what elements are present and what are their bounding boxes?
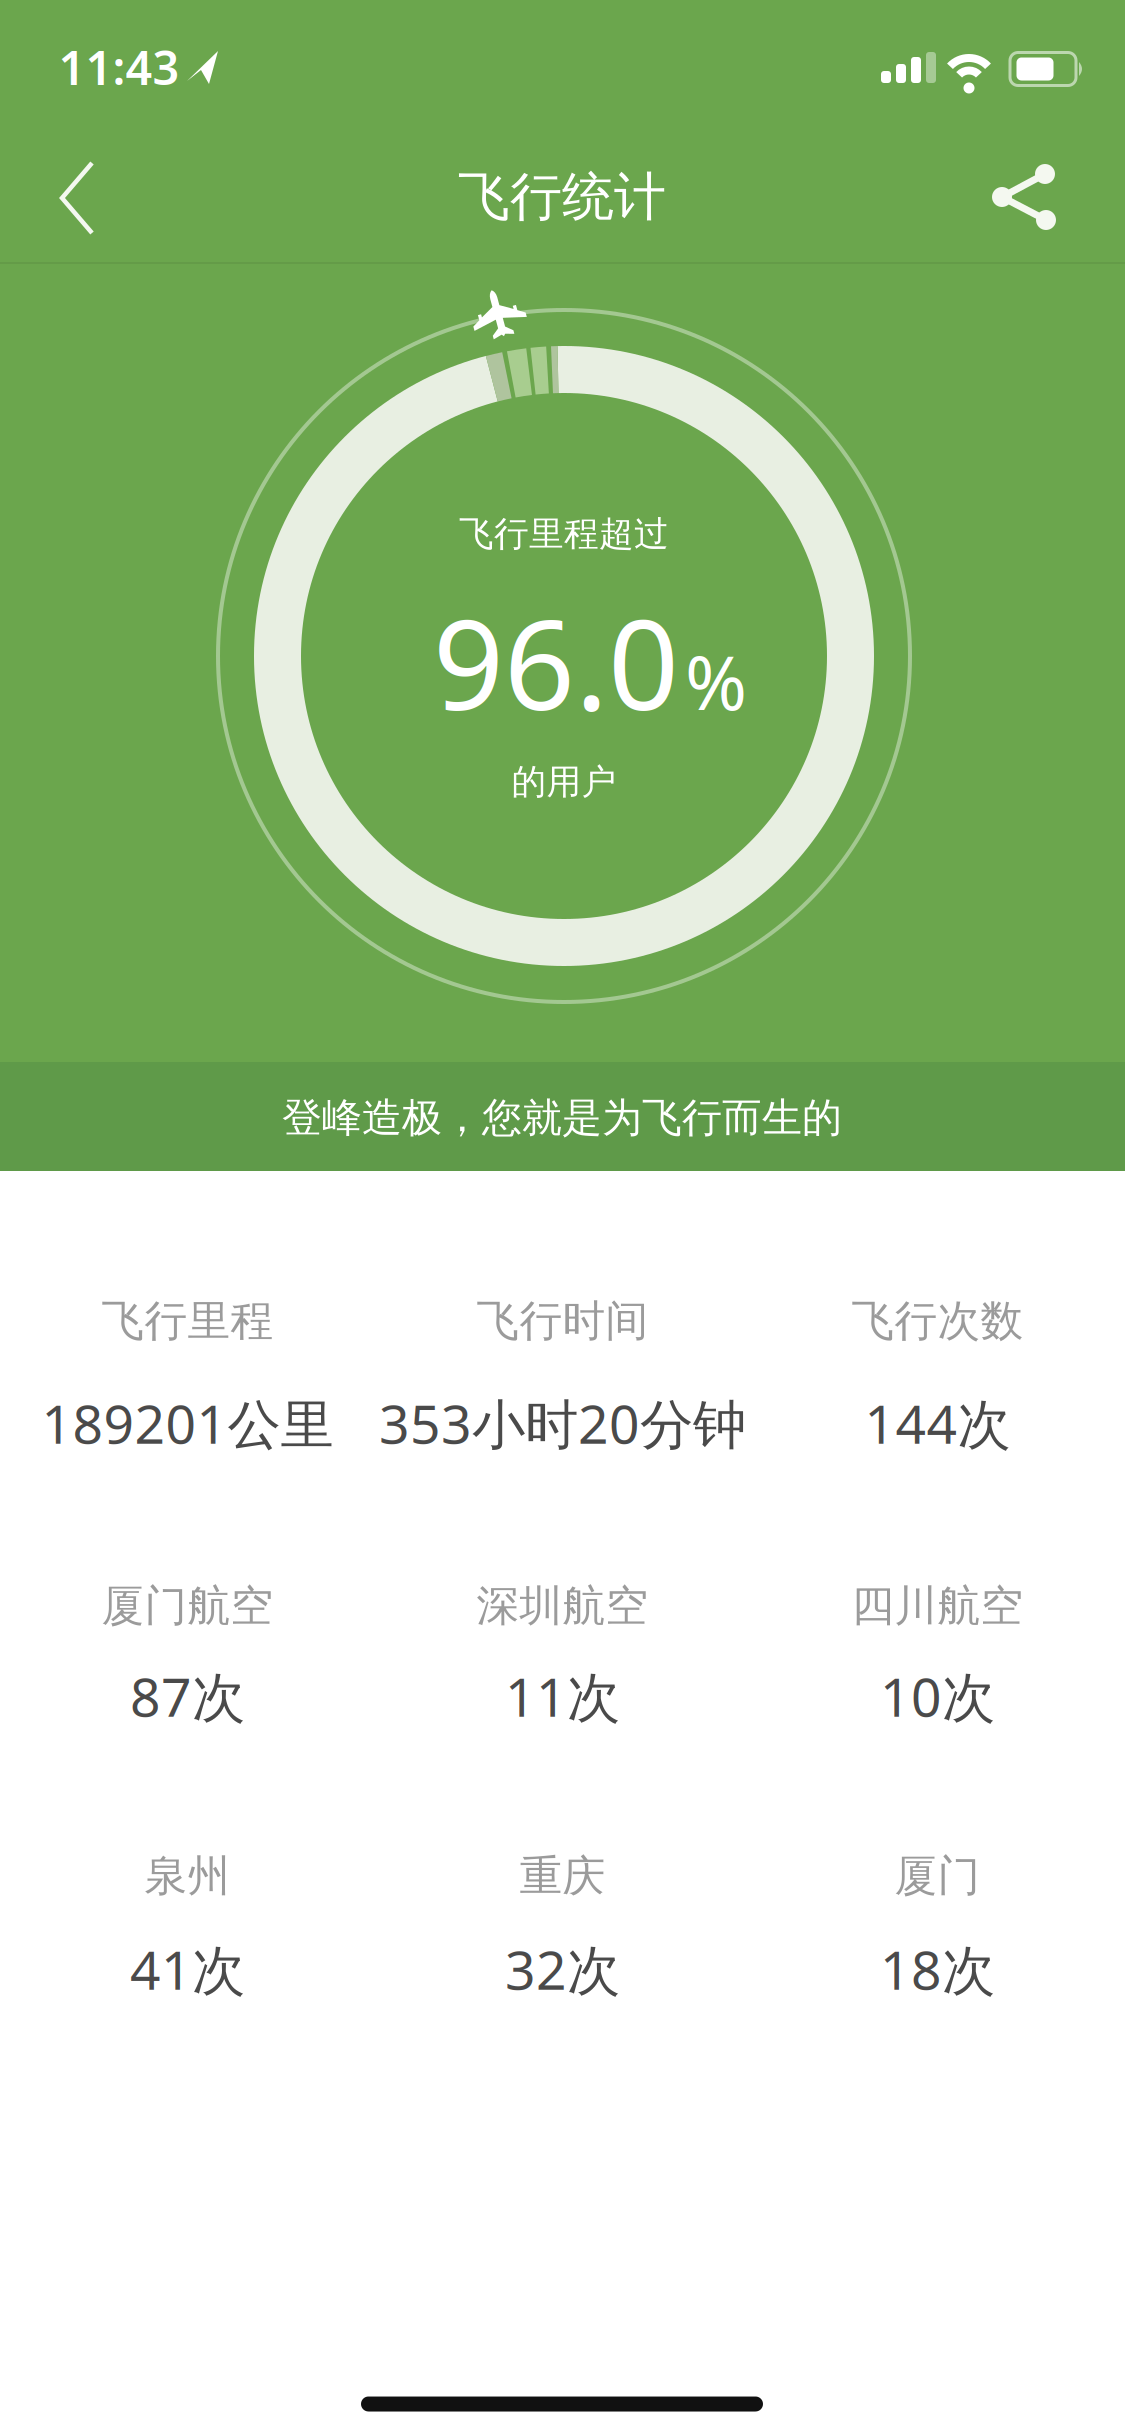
staticText: 登峰造极，您就是为飞行而生的 <box>282 1093 842 1142</box>
staticText: 四川航空 <box>851 1580 1023 1632</box>
staticText: 144次 <box>864 1388 1010 1458</box>
button[interactable] <box>969 142 1079 252</box>
staticText: 深圳航空 <box>476 1580 648 1632</box>
staticText: 189201公里 <box>41 1388 333 1458</box>
staticText: 11次 <box>505 1661 620 1731</box>
staticText: 的用户 <box>511 761 616 803</box>
staticText: 厦门 <box>894 1850 980 1902</box>
staticText: 泉州 <box>144 1850 230 1902</box>
staticText: 重庆 <box>519 1850 605 1902</box>
staticText: 飞行里程 <box>101 1295 273 1347</box>
staticText: 353小时20分钟 <box>379 1388 746 1458</box>
staticText: 飞行统计 <box>458 165 666 229</box>
staticText: 96.0 <box>433 580 679 744</box>
staticText: 18次 <box>880 1934 995 2004</box>
staticText: % <box>685 632 747 731</box>
staticText: 飞行次数 <box>851 1295 1023 1347</box>
staticText: 飞行里程超过 <box>459 513 669 555</box>
staticText: 11:43 <box>58 36 179 98</box>
staticText: 87次 <box>130 1661 245 1731</box>
staticText: 飞行时间 <box>476 1295 648 1347</box>
staticText: 41次 <box>130 1934 245 2004</box>
staticText: 32次 <box>505 1934 620 2004</box>
staticText: 厦门航空 <box>101 1580 273 1632</box>
button[interactable] <box>32 143 122 253</box>
staticText: 10次 <box>880 1661 995 1731</box>
